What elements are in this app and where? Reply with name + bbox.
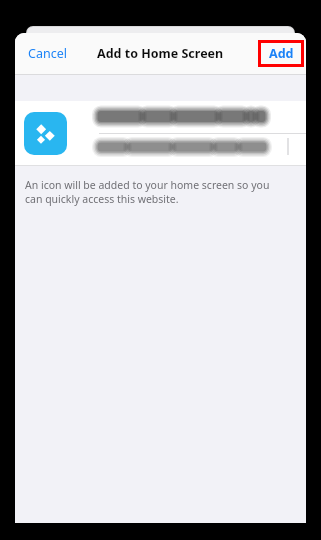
- staticText: Add: [269, 45, 294, 62]
- button[interactable]: Add: [258, 40, 304, 67]
- button[interactable]: Cancel: [15, 39, 75, 68]
- staticText: Add to Home Screen: [97, 45, 224, 62]
- button[interactable]: [15, 101, 306, 165]
- staticText: An icon will be added to your home scree…: [25, 178, 286, 206]
